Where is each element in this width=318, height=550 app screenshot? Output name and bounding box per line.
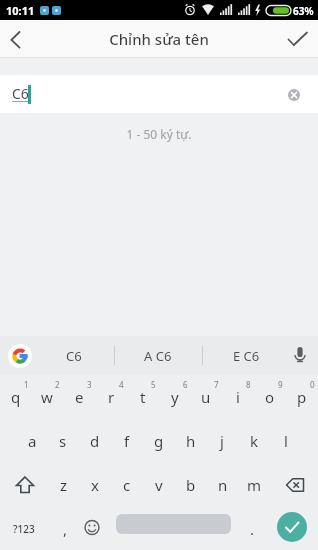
button[interactable]: s [47, 419, 79, 463]
button[interactable]: m [238, 463, 270, 507]
button[interactable]: p [286, 375, 318, 419]
staticText: 5 [151, 379, 161, 390]
button[interactable]: d [79, 419, 111, 463]
staticText: 1 [24, 379, 34, 390]
button[interactable]: y [159, 375, 191, 419]
staticText: h [186, 431, 196, 451]
button[interactable]: z [48, 463, 80, 507]
button[interactable]: a [16, 419, 48, 463]
staticText: g [154, 431, 164, 451]
button[interactable]: n [207, 463, 239, 507]
staticText: 4 [119, 379, 129, 390]
staticText: d [90, 431, 100, 451]
staticText: m [247, 475, 262, 495]
staticText: C6 [66, 347, 82, 365]
staticText: j [220, 431, 224, 451]
button[interactable] [78, 507, 108, 550]
staticText: A C6 [144, 347, 172, 365]
staticText: 10:11 [6, 3, 50, 18]
staticText: n [218, 475, 228, 495]
button[interactable]: i [222, 375, 254, 419]
staticText: c [123, 475, 131, 495]
button[interactable]: f [111, 419, 143, 463]
staticText: v [155, 475, 163, 495]
staticText: i [236, 387, 240, 407]
staticText: a [28, 431, 37, 451]
button[interactable]: ?123 [0, 507, 48, 550]
button[interactable]: j [206, 419, 238, 463]
staticText: 63% [293, 4, 318, 18]
staticText: 2 [55, 379, 65, 390]
button[interactable]: , [50, 507, 80, 550]
staticText: 9 [278, 379, 288, 390]
button[interactable] [288, 89, 300, 101]
staticText: C6 [12, 84, 52, 103]
button[interactable] [0, 20, 44, 58]
button[interactable]: r [95, 375, 127, 419]
staticText: y [171, 387, 179, 407]
staticText: k [250, 431, 259, 451]
button[interactable] [277, 512, 307, 542]
staticText: u [201, 387, 211, 407]
button[interactable]: . [238, 507, 266, 550]
staticText: o [265, 387, 275, 407]
button[interactable]: c [111, 463, 143, 507]
button[interactable]: v [143, 463, 175, 507]
button[interactable]: k [238, 419, 270, 463]
button[interactable]: x [79, 463, 111, 507]
button[interactable]: l [270, 419, 302, 463]
staticText: ?123 [13, 522, 35, 536]
button[interactable]: o [254, 375, 286, 419]
button[interactable]: E C6 [206, 336, 286, 375]
staticText: e [75, 387, 84, 407]
button[interactable] [8, 344, 32, 368]
staticText: f [124, 431, 130, 451]
staticText: E C6 [233, 347, 260, 365]
button[interactable]: g [143, 419, 175, 463]
button[interactable]: C6 [36, 336, 111, 375]
button[interactable]: b [175, 463, 207, 507]
staticText: 8 [246, 379, 256, 390]
staticText: 6 [183, 379, 193, 390]
staticText: z [60, 475, 68, 495]
button[interactable]: h [175, 419, 207, 463]
staticText: Chỉnh sửa tên [60, 29, 258, 49]
button[interactable]: A C6 [118, 336, 198, 375]
staticText: 1 - 50 ký tự. [0, 126, 318, 142]
staticText: t [140, 387, 146, 407]
button[interactable] [116, 514, 231, 534]
staticText: l [284, 431, 288, 451]
staticText: q [11, 387, 21, 407]
button[interactable]: w [31, 375, 63, 419]
staticText: 7 [214, 379, 224, 390]
staticText: r [108, 387, 115, 407]
button[interactable]: u [190, 375, 222, 419]
staticText: x [91, 475, 99, 495]
button[interactable] [0, 463, 48, 507]
button[interactable]: t [127, 375, 159, 419]
button[interactable]: q [0, 375, 32, 419]
staticText: 0 [310, 379, 318, 390]
staticText: . [250, 519, 255, 539]
staticText: , [63, 519, 68, 539]
button[interactable]: e [63, 375, 95, 419]
staticText: p [297, 387, 307, 407]
staticText: b [186, 475, 196, 495]
staticText: w [41, 387, 53, 407]
button[interactable] [274, 20, 318, 58]
staticText: s [59, 431, 67, 451]
button[interactable] [270, 463, 318, 507]
staticText: 3 [87, 379, 97, 390]
